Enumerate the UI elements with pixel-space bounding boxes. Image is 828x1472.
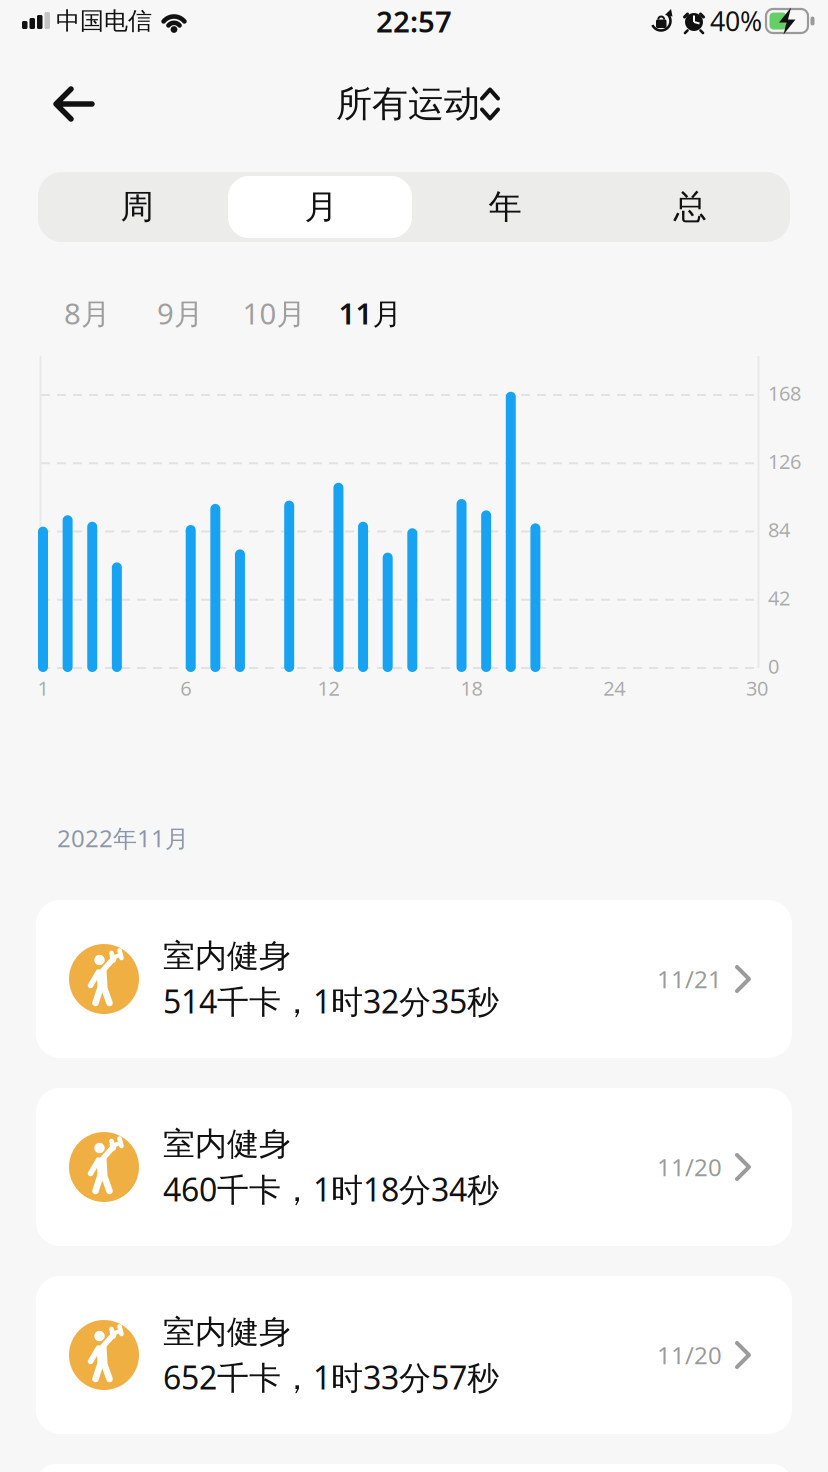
button[interactable]: 室内健身 (36, 1276, 792, 1434)
button[interactable]: 总 (596, 172, 784, 242)
staticText: 11/21 (657, 963, 722, 995)
staticText: 2022年11月 (57, 822, 189, 854)
staticText: 22:57 (376, 1, 452, 40)
button[interactable]: 室内健身 (36, 1088, 792, 1246)
staticText: 460千卡，1时18分34秒 (163, 1168, 499, 1210)
staticText: 所有运动 (336, 82, 480, 126)
staticText: 8月 (64, 293, 110, 332)
staticText: 中国电信 (56, 6, 152, 36)
button[interactable]: 所有运动 (309, 64, 519, 144)
staticText: 总 (673, 186, 706, 227)
staticText: 30 (746, 675, 768, 701)
button[interactable]: 9月 (135, 285, 225, 341)
staticText: 168 (768, 380, 801, 406)
button[interactable]: 月 (227, 172, 415, 242)
button[interactable]: 8月 (42, 285, 132, 341)
staticText: 12 (318, 675, 340, 701)
staticText: 18 (460, 675, 482, 701)
button[interactable]: 周 (43, 172, 231, 242)
button[interactable]: 11月 (325, 285, 415, 341)
staticText: 42 (768, 584, 790, 611)
button[interactable]: 10月 (229, 285, 319, 341)
staticText: 室内健身 (163, 936, 291, 976)
button[interactable]: Back (34, 64, 114, 144)
button[interactable]: 室内健身 (36, 900, 792, 1058)
staticText: 24 (603, 675, 625, 701)
staticText: 1 (37, 675, 48, 701)
staticText: 周 (120, 186, 153, 227)
staticText: 月 (304, 186, 337, 227)
staticText: 室内健身 (163, 1124, 291, 1164)
staticText: 11月 (338, 293, 401, 332)
staticText: 9月 (157, 293, 203, 332)
staticText: 84 (768, 516, 790, 543)
staticText: 11/20 (657, 1151, 722, 1183)
staticText: 11/20 (657, 1339, 722, 1371)
staticText: 0 (768, 653, 779, 679)
staticText: 40% (710, 3, 762, 39)
button[interactable]: 年 (411, 172, 599, 242)
staticText: 514千卡，1时32分35秒 (163, 980, 499, 1022)
staticText: 6 (180, 675, 191, 701)
staticText: 10月 (242, 293, 305, 332)
staticText: 652千卡，1时33分57秒 (163, 1356, 499, 1398)
staticText: 126 (768, 448, 801, 475)
staticText: 室内健身 (163, 1312, 291, 1352)
staticText: 年 (488, 186, 521, 227)
